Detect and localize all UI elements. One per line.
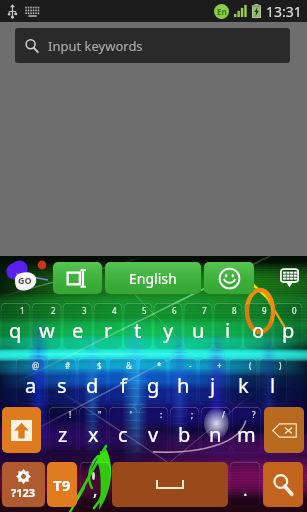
button[interactable]: 9 bbox=[244, 303, 272, 349]
staticText: 1 bbox=[20, 305, 25, 316]
staticText: w bbox=[39, 317, 55, 344]
button[interactable]: , bbox=[80, 462, 110, 507]
button[interactable]: Space bbox=[112, 462, 228, 507]
button[interactable]: 7 bbox=[184, 303, 212, 349]
staticText: @ bbox=[32, 360, 40, 371]
staticText: ( bbox=[249, 360, 252, 371]
button[interactable]: 5 bbox=[124, 303, 152, 349]
staticText: j bbox=[210, 372, 216, 399]
staticText: 3 bbox=[82, 305, 87, 316]
button[interactable]: 1 bbox=[1, 303, 30, 349]
button[interactable]: / bbox=[201, 407, 230, 453]
staticText: n bbox=[209, 421, 222, 448]
staticText: & bbox=[126, 360, 132, 371]
staticText: m bbox=[237, 421, 256, 448]
staticText: s bbox=[57, 372, 67, 399]
button[interactable]: ) bbox=[259, 358, 287, 404]
staticText: ) bbox=[279, 360, 282, 371]
staticText: English bbox=[129, 269, 177, 288]
button[interactable]: Hide keyboard bbox=[271, 262, 307, 294]
staticText: l bbox=[270, 372, 276, 399]
staticText: 5 bbox=[142, 305, 147, 316]
staticText: : bbox=[160, 409, 163, 420]
staticText: 7 bbox=[202, 305, 207, 316]
button[interactable]: Switch keyboard bbox=[53, 262, 102, 294]
staticText: En bbox=[217, 6, 227, 17]
button[interactable]: $ bbox=[78, 358, 107, 404]
button[interactable]: ! bbox=[49, 407, 77, 453]
staticText: c bbox=[118, 421, 128, 448]
staticText: ; bbox=[191, 409, 194, 420]
button[interactable]: # bbox=[47, 358, 76, 404]
staticText: g bbox=[147, 372, 160, 399]
staticText: ?123 bbox=[11, 485, 36, 500]
staticText: x bbox=[88, 421, 99, 448]
staticText: 4 bbox=[112, 305, 117, 316]
staticText: t bbox=[134, 317, 142, 344]
staticText: h bbox=[177, 372, 190, 399]
staticText: a bbox=[25, 372, 37, 399]
button[interactable]: 6 bbox=[154, 303, 182, 349]
staticText: $ bbox=[97, 360, 102, 371]
button[interactable]: English bbox=[105, 262, 201, 294]
staticText: Input keywords bbox=[48, 37, 143, 55]
button[interactable]: Input keywords bbox=[15, 28, 290, 63]
button[interactable]: . bbox=[230, 462, 260, 507]
button[interactable]: + bbox=[199, 358, 227, 404]
button[interactable]: - bbox=[169, 358, 197, 404]
staticText: - bbox=[189, 360, 192, 371]
button[interactable]: 4 bbox=[94, 303, 122, 349]
staticText: GO bbox=[18, 274, 32, 286]
button[interactable]: Search bbox=[263, 462, 303, 507]
staticText: b bbox=[178, 421, 191, 448]
staticText: + bbox=[217, 360, 222, 371]
staticText: u bbox=[192, 317, 205, 344]
staticText: 13:31 bbox=[266, 2, 302, 21]
staticText: 9 bbox=[262, 305, 267, 316]
staticText: . bbox=[243, 478, 248, 501]
staticText: y bbox=[163, 317, 174, 344]
button[interactable]: Backspace bbox=[264, 407, 304, 453]
button[interactable]: GO Keyboard menu bbox=[4, 258, 50, 294]
button[interactable]: * bbox=[139, 358, 167, 404]
button[interactable]: 0 bbox=[274, 303, 302, 349]
staticText: * bbox=[157, 360, 162, 371]
button[interactable]: " bbox=[79, 407, 107, 453]
staticText: z bbox=[58, 421, 68, 448]
staticText: 8 bbox=[232, 305, 237, 316]
button[interactable]: ' bbox=[109, 407, 137, 453]
staticText: p bbox=[282, 317, 295, 344]
button[interactable]: ; bbox=[170, 407, 199, 453]
staticText: " bbox=[98, 409, 102, 420]
button[interactable]: & bbox=[109, 358, 137, 404]
button[interactable]: 2 bbox=[32, 303, 61, 349]
button[interactable]: ?123 bbox=[2, 462, 45, 507]
staticText: e bbox=[72, 317, 84, 344]
staticText: v bbox=[148, 421, 159, 448]
button[interactable]: ( bbox=[229, 358, 257, 404]
staticText: / bbox=[222, 409, 225, 420]
button[interactable]: ? bbox=[232, 407, 261, 453]
button[interactable]: @ bbox=[16, 358, 45, 404]
button[interactable]: : bbox=[139, 407, 168, 453]
staticText: # bbox=[65, 360, 71, 371]
button[interactable]: 3 bbox=[63, 303, 92, 349]
button[interactable]: Shift bbox=[2, 407, 41, 453]
staticText: ? bbox=[252, 409, 256, 420]
staticText: f bbox=[120, 372, 127, 399]
button[interactable]: Emoji bbox=[204, 262, 254, 294]
staticText: ' bbox=[130, 409, 132, 420]
staticText: k bbox=[238, 372, 249, 399]
staticText: 0 bbox=[292, 305, 297, 316]
staticText: , bbox=[93, 478, 98, 501]
staticText: T9 bbox=[53, 475, 71, 495]
button[interactable]: T9 bbox=[47, 462, 77, 507]
staticText: i bbox=[225, 317, 231, 344]
staticText: ! bbox=[69, 409, 72, 420]
staticText: 2 bbox=[51, 305, 56, 316]
staticText: d bbox=[86, 372, 99, 399]
staticText: r bbox=[104, 317, 113, 344]
staticText: q bbox=[9, 317, 22, 344]
staticText: o bbox=[252, 317, 265, 344]
button[interactable]: 8 bbox=[214, 303, 242, 349]
